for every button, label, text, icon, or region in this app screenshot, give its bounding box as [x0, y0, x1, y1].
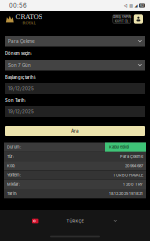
staticText: Miktar: [7, 182, 20, 187]
staticText: ·ROYAL· [21, 21, 36, 25]
staticText: Yöntem: [7, 173, 21, 177]
staticText: Son Tarih: [5, 98, 26, 103]
staticText: 19/12/2025 [8, 86, 34, 91]
staticText: ◢ [135, 3, 138, 8]
staticText: TURBO HAVALE [113, 173, 143, 177]
staticText: 1 200 TRY [123, 182, 143, 187]
staticText: Ara [71, 128, 79, 134]
button[interactable]: Son 7 Gün [5, 60, 145, 70]
button[interactable]: 19/12/2025 [5, 106, 145, 117]
staticText: Kabul edildi [109, 145, 129, 149]
staticText: Para Çekme [8, 38, 35, 44]
button[interactable]: Ara [5, 126, 145, 136]
staticText: Durum: [7, 145, 21, 149]
staticText: Başlangıç tarihi: [5, 75, 36, 80]
button[interactable]: TÜRKÇE [0, 210, 150, 232]
staticText: 20994687 [125, 163, 143, 168]
button[interactable]: Para Çekme [5, 36, 145, 46]
staticText: Dönem seçin: [5, 51, 32, 56]
button[interactable]: 19/12/2025 [5, 83, 145, 94]
staticText: Son 7 Gün [8, 62, 31, 68]
staticText: KAYIT OL [115, 19, 129, 23]
staticText: ▥ [129, 3, 133, 8]
button[interactable]: Account [134, 14, 143, 24]
staticText: Tür: [7, 154, 14, 159]
staticText: 19/12/2025 [8, 109, 34, 114]
staticText: Para Çekme [120, 154, 143, 159]
staticText: CRATOS [15, 13, 42, 20]
staticText: Kod: [7, 163, 15, 168]
staticText: 00:56 [9, 2, 27, 9]
staticText: 62 [140, 3, 144, 8]
button[interactable]: GİRİŞ YAPIN [113, 15, 131, 23]
staticText: TÜRKÇE [66, 219, 83, 223]
staticText: ◁ [124, 3, 128, 8]
staticText: Tarih: [7, 191, 17, 196]
staticText: GİRİŞ YAPIN [113, 15, 131, 19]
staticText: 18.12.2025 19:18:31 [109, 191, 143, 196]
